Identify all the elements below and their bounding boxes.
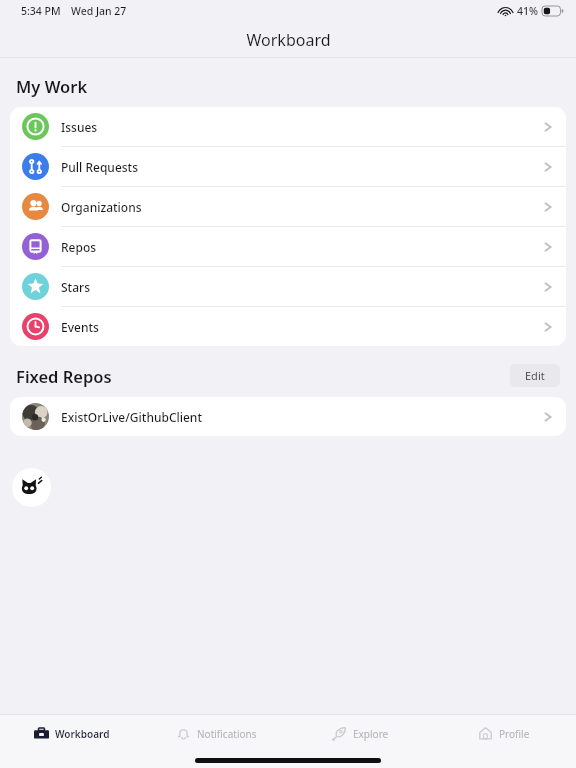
button[interactable]: Events: [10, 307, 566, 346]
staticText: Fixed Repos: [16, 365, 112, 387]
button[interactable]: Repos: [10, 227, 566, 266]
staticText: Events: [61, 319, 99, 335]
button[interactable]: Organizations: [10, 187, 566, 226]
staticText: Stars: [61, 279, 90, 295]
button[interactable]: Issues: [10, 107, 566, 146]
staticText: ExistOrLive/GithubClient: [61, 409, 202, 425]
staticText: My Work: [16, 75, 88, 97]
staticText: Explore: [353, 727, 389, 741]
staticText: Workboard: [55, 727, 110, 741]
staticText: Notifications: [197, 727, 257, 741]
button[interactable]: Pull Requests: [10, 147, 566, 186]
button[interactable]: Workboard: [0, 715, 144, 752]
staticText: Organizations: [61, 199, 142, 215]
button[interactable]: Stars: [10, 267, 566, 306]
staticText: Profile: [499, 727, 530, 741]
button[interactable]: Profile: [432, 715, 576, 752]
button[interactable]: Edit: [510, 364, 560, 387]
staticText: Repos: [61, 239, 97, 255]
staticText: Wed Jan 27: [71, 4, 127, 18]
staticText: Workboard: [246, 29, 331, 51]
button[interactable]: Notifications: [144, 715, 288, 752]
staticText: Issues: [61, 119, 98, 135]
staticText: 41%: [517, 4, 538, 18]
staticText: 5:34 PM: [21, 4, 61, 18]
button[interactable]: ExistOrLive/GithubClient: [10, 397, 566, 436]
button[interactable]: GitHub: [12, 468, 51, 507]
button[interactable]: Explore: [288, 715, 432, 752]
staticText: Edit: [525, 368, 545, 383]
staticText: Pull Requests: [61, 159, 139, 175]
